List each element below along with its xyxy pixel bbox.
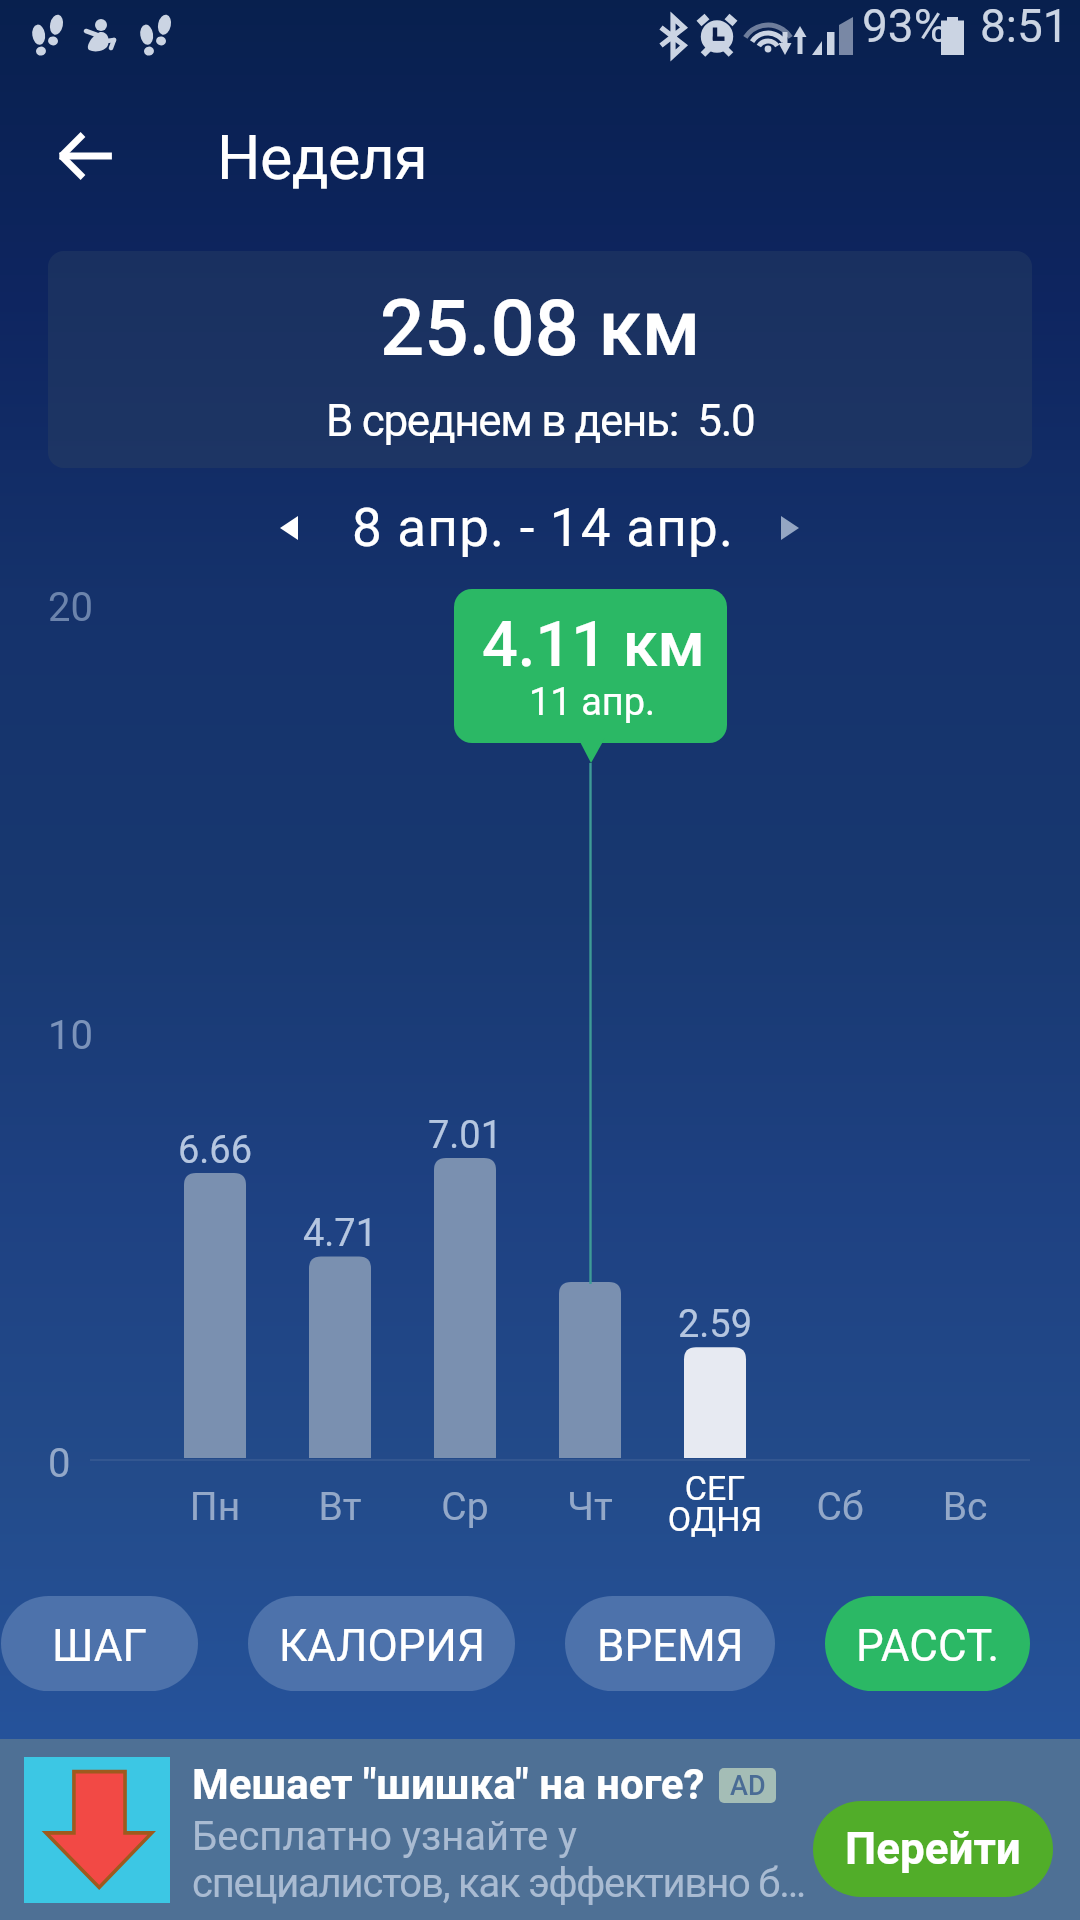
staticText: Вт: [250, 1484, 430, 1530]
button[interactable]: Next week: [755, 492, 829, 566]
staticText: Чт: [500, 1484, 680, 1530]
staticText: AD: [730, 1770, 766, 1802]
staticText: Мешает "шишка" на ноге?: [192, 1760, 705, 1809]
button[interactable]: 4.11 км: [454, 589, 727, 743]
staticText: 7.01: [375, 1113, 555, 1158]
staticText: 8:51: [980, 0, 1069, 53]
staticText: 4.11 км: [482, 608, 705, 682]
staticText: Вс: [875, 1484, 1055, 1530]
staticText: 11 апр.: [529, 680, 656, 725]
staticText: Пн: [125, 1484, 305, 1530]
staticText: ШАГ: [52, 1620, 147, 1672]
staticText: 8 апр. - 14 апр.: [352, 497, 735, 559]
button[interactable]: 25.08 км: [48, 251, 1032, 468]
staticText: Ср: [375, 1484, 555, 1530]
staticText: 4.71: [250, 1211, 430, 1256]
staticText: 93%: [862, 0, 948, 53]
staticText: 0: [48, 1440, 71, 1487]
button[interactable]: Перейти: [813, 1801, 1053, 1897]
button[interactable]: ШАГ: [1, 1596, 198, 1691]
staticText: 25.08 км: [380, 283, 701, 374]
staticText: 10: [48, 1012, 93, 1059]
staticText: 2.59: [625, 1302, 805, 1347]
staticText: РАССТ.: [856, 1620, 1000, 1672]
staticText: Бесплатно узнайте у: [192, 1813, 577, 1860]
button[interactable]: Мешает "шишка" на ноге?: [0, 1739, 1080, 1920]
button[interactable]: КАЛОРИЯ: [248, 1596, 515, 1691]
staticText: Неделя: [217, 122, 428, 193]
staticText: В среднем в день: 5.0: [326, 395, 755, 447]
staticText: СЕГ ОДНЯ: [625, 1468, 805, 1540]
button[interactable]: ВРЕМЯ: [565, 1596, 775, 1691]
staticText: КАЛОРИЯ: [279, 1620, 485, 1672]
staticText: 20: [48, 584, 93, 631]
staticText: ВРЕМЯ: [597, 1620, 744, 1672]
staticText: Сб: [750, 1484, 930, 1530]
staticText: специалистов, как эффективно б…: [192, 1860, 805, 1907]
button[interactable]: Previous week: [252, 492, 326, 566]
button[interactable]: Back: [24, 80, 144, 200]
staticText: Перейти: [845, 1823, 1021, 1875]
staticText: 6.66: [125, 1128, 305, 1173]
button[interactable]: РАССТ.: [825, 1596, 1030, 1691]
